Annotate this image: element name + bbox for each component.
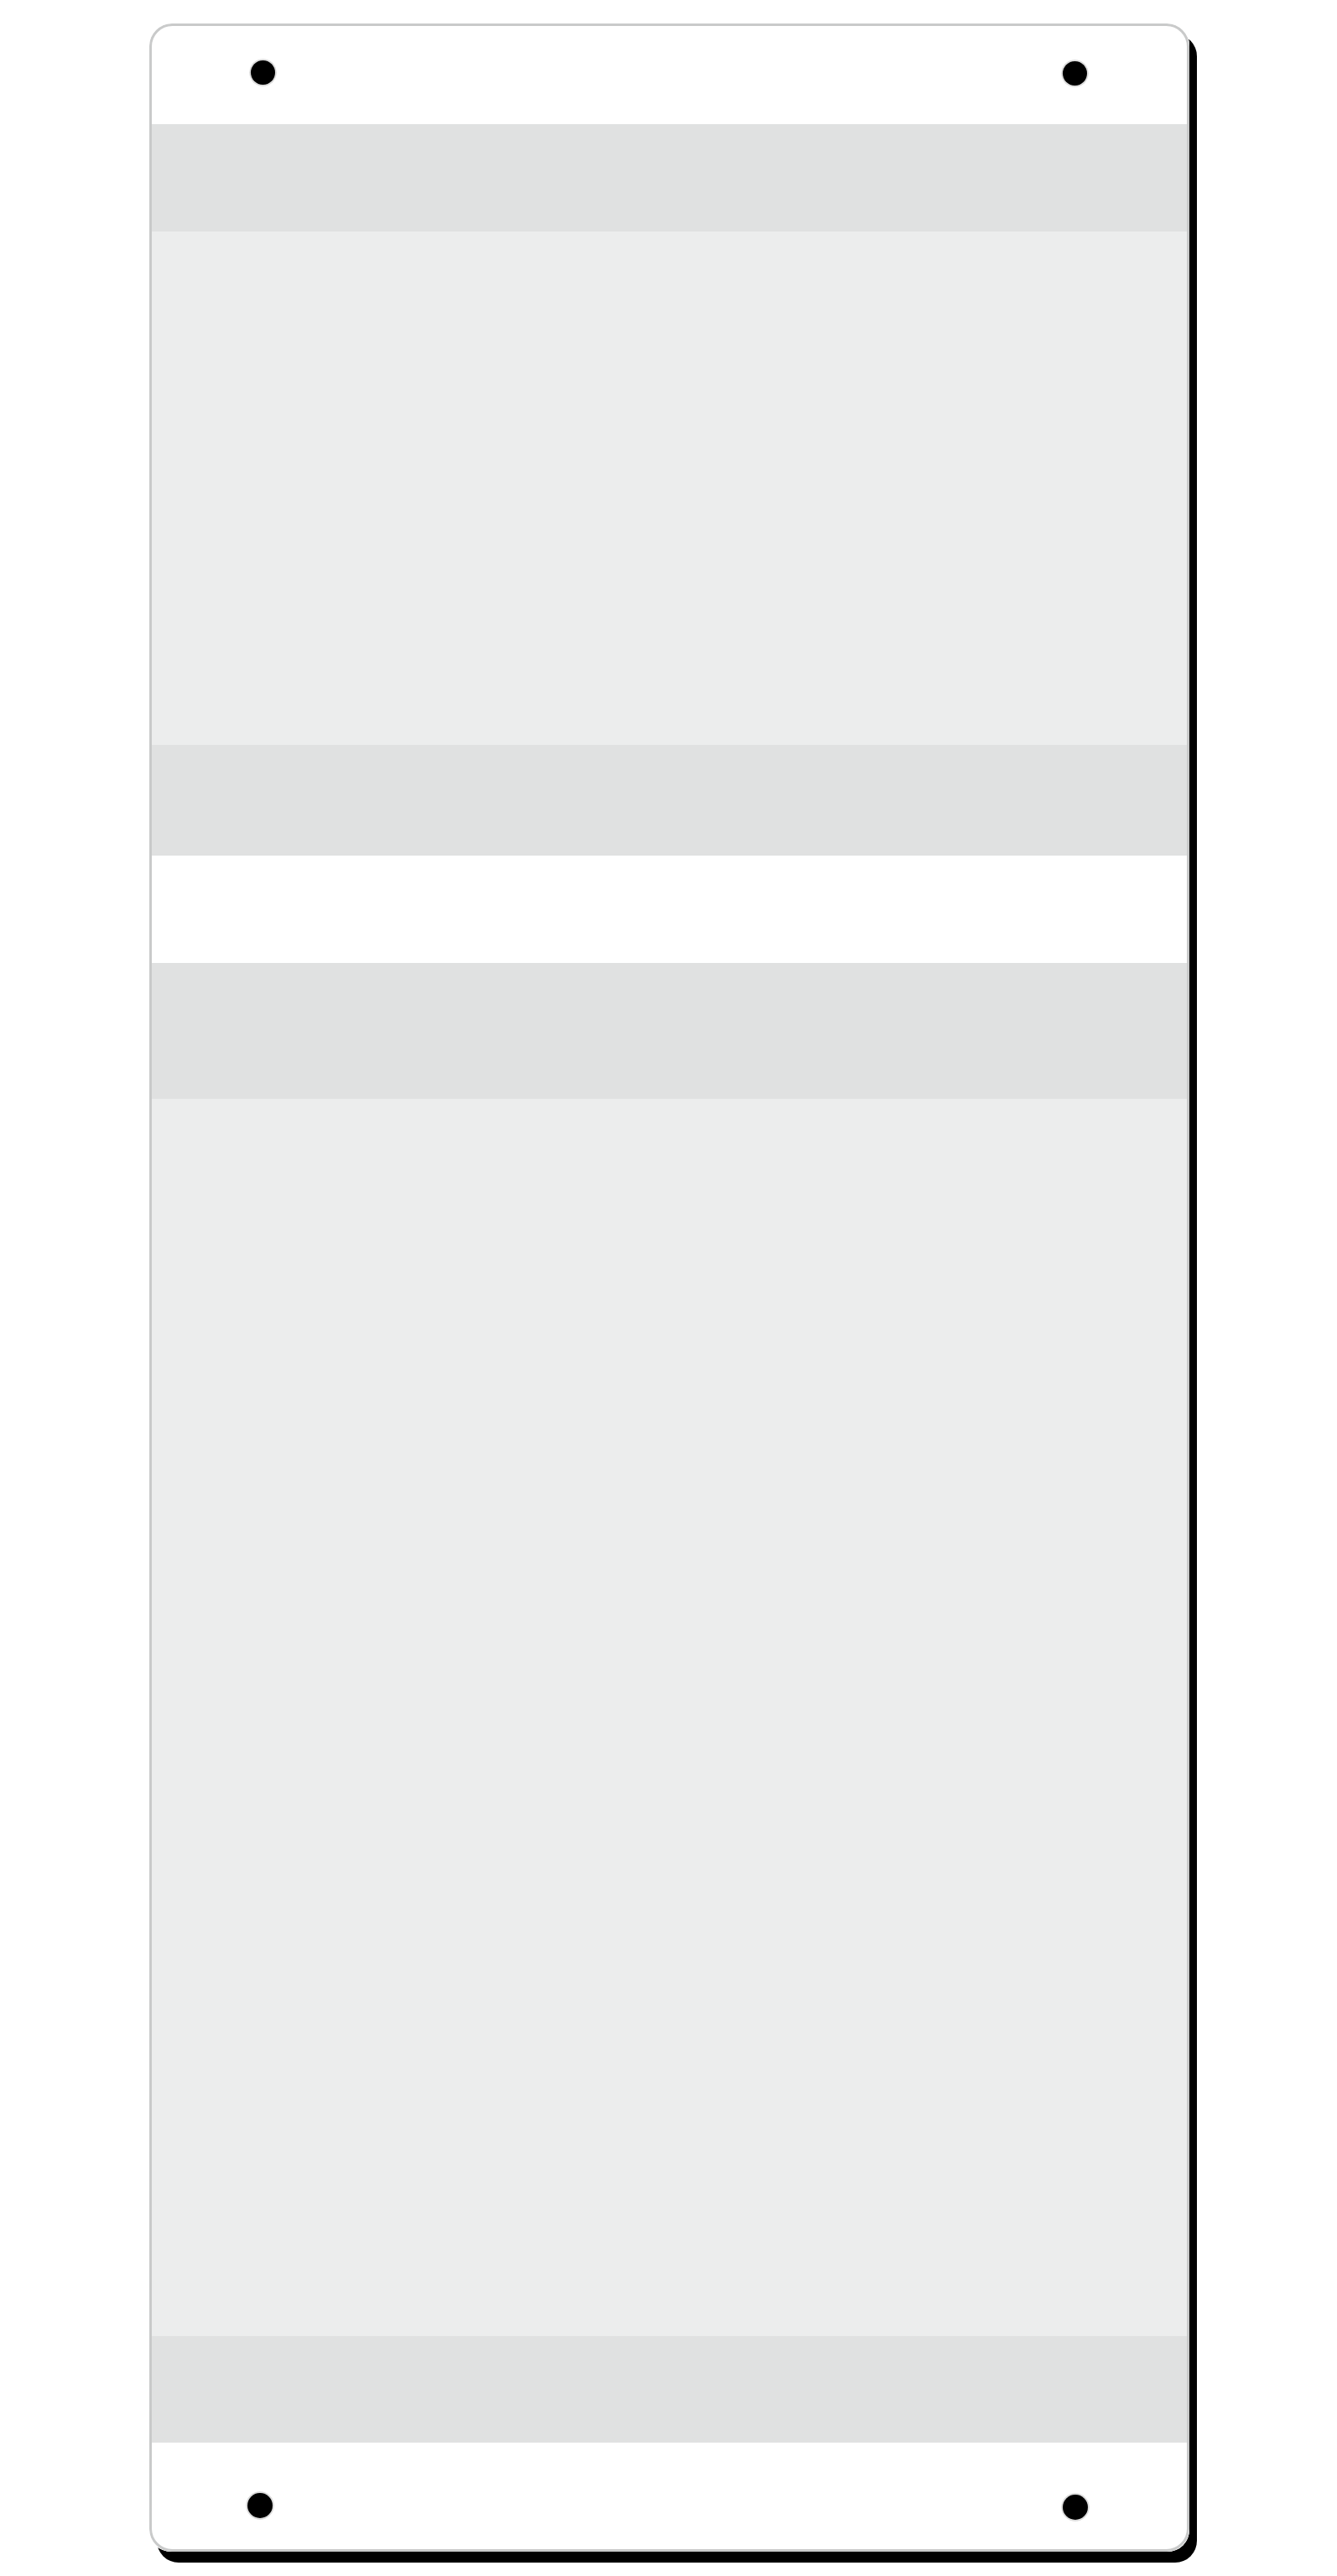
button[interactable]: More options (1061, 60, 1089, 87)
button[interactable] (149, 23, 1189, 124)
button[interactable]: Menu (249, 59, 277, 86)
button[interactable] (149, 124, 1189, 232)
button[interactable] (149, 856, 1189, 963)
button[interactable] (149, 2443, 1189, 2552)
button[interactable]: Home (246, 2491, 274, 2520)
button[interactable]: Profile (1061, 2493, 1090, 2521)
